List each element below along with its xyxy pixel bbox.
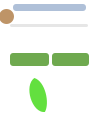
button[interactable]	[52, 53, 89, 66]
button[interactable]	[10, 53, 49, 66]
